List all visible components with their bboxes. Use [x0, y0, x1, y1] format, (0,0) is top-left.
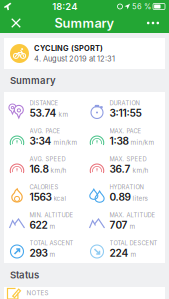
staticText: MIN. ALTITUDE — [29, 211, 73, 219]
staticText: DURATION — [109, 99, 139, 107]
staticText: MAX. PACE — [109, 127, 141, 135]
staticText: MAX. ALTITUDE — [109, 211, 155, 219]
staticText: min/km — [130, 138, 154, 146]
staticText: 16.8 — [29, 163, 48, 175]
staticText: Summary — [10, 75, 56, 86]
staticText: TOTAL DESCENT — [109, 239, 157, 247]
staticText: AVG. PACE — [29, 127, 60, 135]
staticText: CALORIES — [29, 183, 58, 191]
staticText: km — [58, 110, 68, 118]
staticText: 56 % — [132, 2, 151, 11]
staticText: DISTANCE — [29, 99, 58, 107]
staticText: min/km — [53, 138, 77, 146]
staticText: Summary — [54, 15, 114, 31]
staticText: 3:11:55 — [109, 107, 141, 119]
staticText: 4. August 2019 at 12:31 — [34, 54, 115, 63]
staticText: CYCLING (SPORT) — [34, 44, 103, 53]
staticText: m — [130, 250, 136, 258]
staticText: TOTAL ASCENT — [29, 239, 73, 247]
staticText: km/h — [132, 166, 148, 174]
staticText: 53.74 — [29, 107, 56, 119]
staticText: 0.89 — [109, 191, 130, 203]
staticText: 622 — [29, 219, 47, 231]
staticText: liters — [132, 194, 147, 202]
staticText: Status — [10, 269, 39, 281]
staticText: 18:24 — [52, 1, 77, 12]
staticText: NOTES — [26, 289, 48, 297]
staticText: m — [49, 222, 55, 230]
staticText: 36.7 — [109, 163, 130, 175]
staticText: kcal — [53, 194, 66, 202]
staticText: MAX. SPEED — [109, 155, 146, 163]
staticText: AVG. SPEED — [29, 155, 65, 163]
staticText: HYDRATION — [109, 183, 143, 191]
staticText: 707 — [109, 219, 127, 231]
staticText: 3:34 — [29, 135, 51, 147]
staticText: m — [129, 222, 135, 230]
button[interactable]: Close — [0, 13, 32, 33]
button[interactable]: More options — [137, 13, 169, 33]
staticText: m — [49, 250, 55, 258]
staticText: 1:38 — [109, 135, 128, 147]
staticText: 1563 — [29, 191, 51, 203]
staticText: km/h — [50, 166, 66, 174]
staticText: 224 — [109, 247, 128, 259]
staticText: 293 — [29, 247, 47, 259]
